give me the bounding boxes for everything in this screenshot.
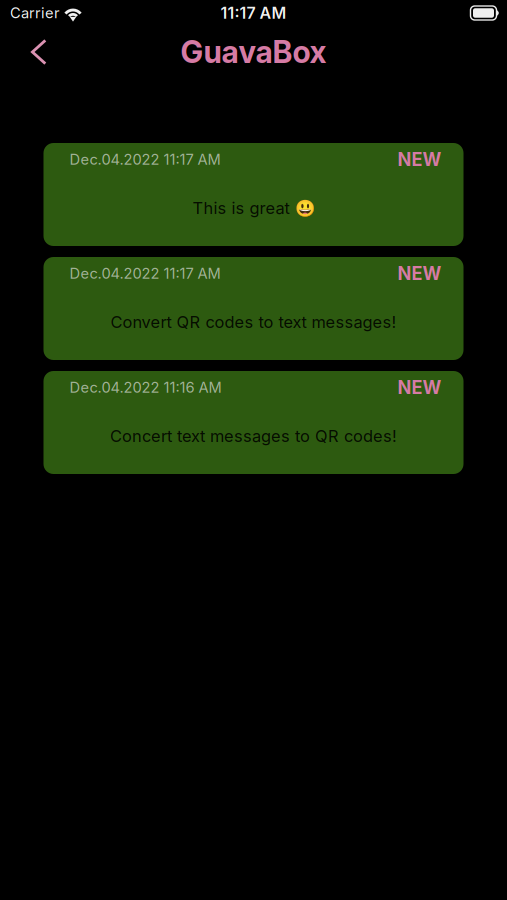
staticText: NEW xyxy=(397,148,441,170)
staticText: Dec.04.2022 11:17 AM xyxy=(69,265,220,282)
staticText: Concert text messages to QR codes! xyxy=(110,426,397,446)
button[interactable]: Dec.04.2022 11:17 AM xyxy=(43,143,463,246)
button[interactable]: Back xyxy=(0,26,63,78)
button[interactable]: Dec.04.2022 11:16 AM xyxy=(43,371,463,474)
staticText: 11:17 AM xyxy=(220,3,286,23)
staticText: GuavaBox xyxy=(180,34,326,70)
staticText: Carrier xyxy=(10,4,60,22)
staticText: Dec.04.2022 11:17 AM xyxy=(69,151,220,168)
staticText: NEW xyxy=(397,376,441,398)
staticText: Convert QR codes to text messages! xyxy=(110,312,396,332)
button[interactable]: Dec.04.2022 11:17 AM xyxy=(43,257,463,360)
staticText: Dec.04.2022 11:16 AM xyxy=(69,379,221,396)
staticText: NEW xyxy=(397,262,441,284)
staticText: This is great 😃 xyxy=(192,198,314,218)
